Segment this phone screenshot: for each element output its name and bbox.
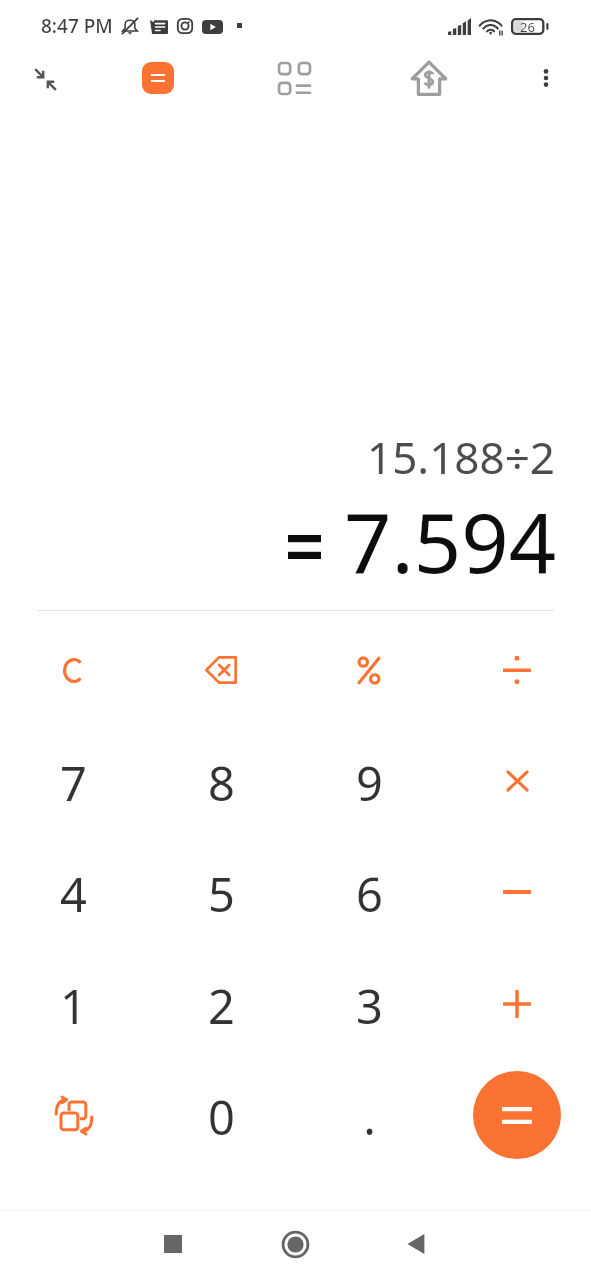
button[interactable]: Collapse [24, 57, 66, 99]
other: Backspace [205, 656, 237, 684]
button[interactable]: Recents [145, 1216, 201, 1272]
button[interactable]: Clear [0, 614, 147, 726]
staticText: 8:47 PM [41, 13, 113, 39]
staticText: 3 [356, 974, 383, 1038]
other: Divide [503, 656, 531, 684]
button[interactable]: Convert units [0, 1059, 147, 1171]
button[interactable]: 5 [147, 836, 295, 948]
other: Convert units [54, 1097, 94, 1134]
button[interactable]: Minus [443, 836, 591, 948]
button[interactable]: 0 [147, 1059, 295, 1171]
staticText: 0 [208, 1085, 235, 1149]
button[interactable]: 3 [295, 948, 443, 1060]
button[interactable]: Backspace [147, 614, 295, 726]
button[interactable]: 2 [147, 948, 295, 1060]
staticText: 1 [60, 974, 87, 1038]
button[interactable]: Plus [443, 948, 591, 1060]
staticText: 4 [60, 862, 87, 926]
button[interactable]: . [295, 1059, 443, 1171]
button[interactable]: 1 [0, 948, 147, 1060]
button[interactable]: Unit converter [273, 57, 315, 99]
button[interactable]: 4 [0, 836, 147, 948]
button[interactable]: 8 [147, 725, 295, 837]
button[interactable]: Equals [443, 1059, 591, 1171]
other: Clear [63, 658, 85, 683]
button[interactable]: Back [389, 1216, 445, 1272]
staticText: 8 [208, 751, 235, 815]
button[interactable]: 6 [295, 836, 443, 948]
button[interactable]: 9 [295, 725, 443, 837]
button[interactable]: More options [525, 57, 567, 99]
other: Percent [356, 656, 382, 685]
staticText: 7 [60, 751, 87, 815]
staticText: 26 [520, 18, 535, 35]
staticText: 5 [208, 862, 235, 926]
button[interactable]: Percent [295, 614, 443, 726]
button[interactable]: Calculator [137, 57, 179, 99]
other: Minus [503, 890, 531, 894]
staticText: 15.188÷2 [367, 427, 555, 487]
button[interactable]: Mortgage [408, 57, 450, 99]
other: Plus [503, 990, 531, 1018]
staticText: . [363, 1085, 376, 1149]
button[interactable]: 7 [0, 725, 147, 837]
staticText: 7.594 [344, 484, 557, 597]
button[interactable]: Multiply [443, 725, 591, 837]
button[interactable]: Equals [473, 1071, 561, 1159]
button[interactable]: Divide [443, 614, 591, 726]
other: Multiply [506, 770, 529, 792]
staticText: 2 [208, 974, 235, 1038]
staticText: 6 [356, 862, 383, 926]
staticText: 9 [356, 751, 383, 815]
button[interactable]: Home [267, 1216, 323, 1272]
